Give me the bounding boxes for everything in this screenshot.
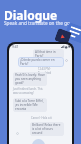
staticText: Just finished lunch. This was so amazing… [13, 87, 46, 95]
button[interactable]: All that time in Paris? [33, 49, 64, 59]
staticText: Yeah! It's lovely. Have you seen anythin… [15, 73, 45, 85]
staticText: Dialogue [4, 7, 58, 23]
staticText: Cancel · Hola a ti [31, 116, 55, 120]
staticText: 9:41 [12, 45, 19, 49]
staticText: 12:43 PM · Translated [38, 67, 64, 75]
button[interactable]: Brilliant! Relax there is a lot of tours… [30, 122, 64, 136]
button[interactable]: Subí a la Torre Eiffel, ¡es increíble! M… [13, 98, 47, 112]
staticText: Speak and translate on the go [4, 20, 70, 26]
button[interactable]: Microphone [32, 139, 45, 144]
button[interactable]: Play audio [54, 28, 72, 45]
button[interactable]: Yeah! It's lovely. Have you seen anythin… [13, 72, 47, 86]
staticText: ¿Dónde puedo comer en París? [20, 58, 62, 66]
staticText: All that time in Paris? [35, 50, 62, 58]
staticText: Brilliant! Relax there is a lot of tours… [32, 123, 62, 135]
staticText: Subí a la Torre Eiffel, ¡es increíble! M… [15, 99, 45, 111]
button[interactable]: ¿Dónde puedo comer en París? [18, 57, 64, 67]
button[interactable]: Play translation [65, 59, 68, 62]
button[interactable]: Translate card [64, 22, 81, 44]
